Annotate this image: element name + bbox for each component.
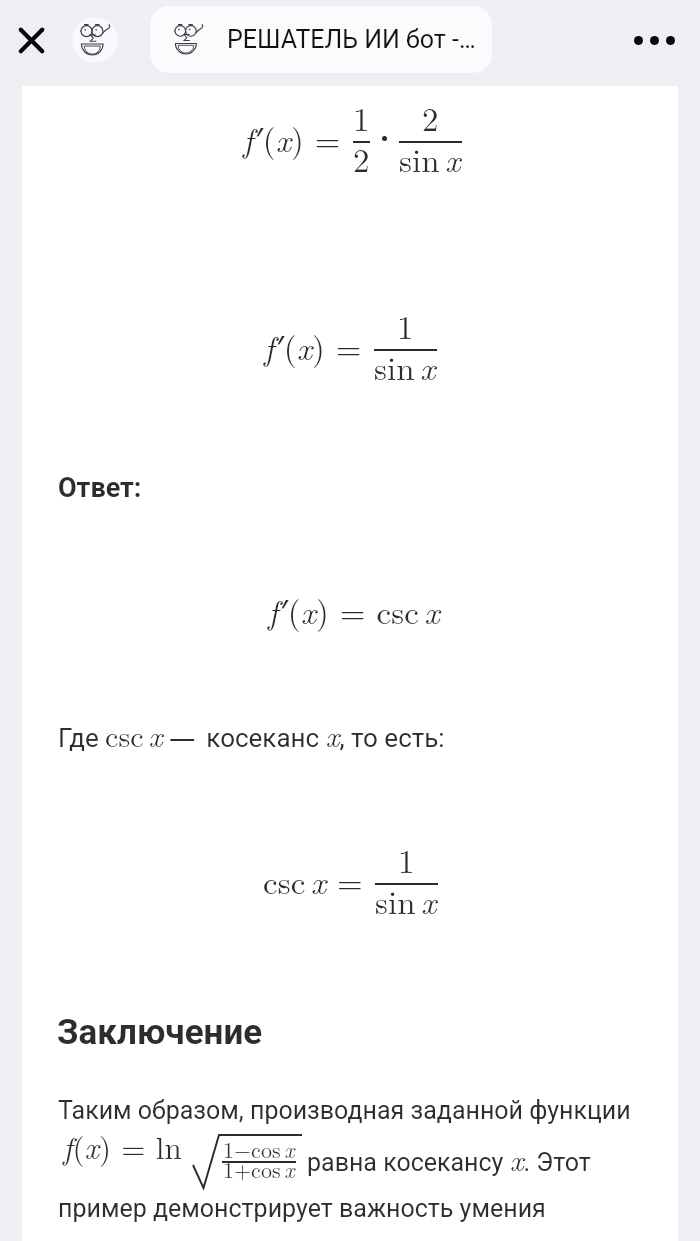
- staticText: 1: [398, 836, 415, 883]
- button[interactable]: Close: [7, 16, 55, 64]
- staticText: f(x) = ln: [63, 1124, 182, 1168]
- staticText: 1: [353, 94, 370, 141]
- button[interactable]: More options: [630, 16, 678, 64]
- staticText: f ′(x) =: [264, 323, 362, 370]
- staticText: 2: [422, 94, 439, 141]
- staticText: Заключение: [57, 1012, 263, 1053]
- staticText: Таким образом, производная заданной функ…: [58, 1096, 631, 1125]
- staticText: csc x =: [263, 857, 363, 904]
- staticText: 2: [353, 135, 370, 182]
- staticText: sin x: [375, 877, 437, 924]
- staticText: f ′(x) = csc x: [268, 587, 440, 634]
- staticText: f ′(x) =: [243, 115, 341, 162]
- staticText: sin x: [399, 135, 461, 182]
- staticText: РЕШАТЕЛЬ ИИ бот -…: [227, 25, 476, 54]
- staticText: Ответ:: [58, 472, 142, 504]
- button[interactable]: Bot avatar: [72, 17, 118, 63]
- staticText: 1+cos x: [223, 1153, 295, 1184]
- staticText: 1−cos x: [223, 1133, 295, 1164]
- button[interactable]: РЕШАТЕЛЬ ИИ бот -…: [150, 6, 492, 73]
- staticText: Где csc x — косеканс x, то есть:: [58, 713, 445, 756]
- staticText: пример демонстрирует важность умения: [58, 1194, 546, 1223]
- staticText: 1: [397, 302, 414, 349]
- staticText: равна косекансу x. Этот: [307, 1137, 591, 1179]
- staticText: sin x: [374, 343, 436, 390]
